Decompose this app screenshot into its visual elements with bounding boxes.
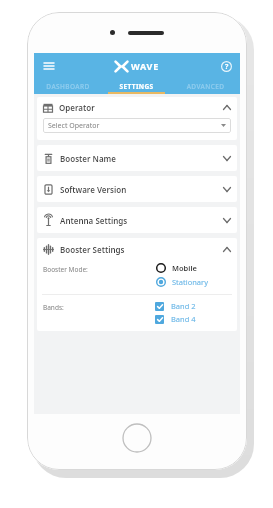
staticText: ? — [225, 62, 229, 72]
staticText: Booster Settings — [60, 244, 125, 255]
button[interactable]: Booster Settings — [37, 238, 237, 261]
staticText: SETTINGS — [102, 82, 171, 91]
button[interactable]: Menu — [41, 58, 57, 74]
staticText: DASHBOARD — [34, 82, 102, 91]
button[interactable]: Operator — [37, 97, 237, 118]
staticText: Mobile — [172, 263, 197, 273]
button[interactable]: Band 2 — [155, 301, 231, 311]
button[interactable]: Antenna Settings — [37, 207, 237, 233]
staticText: Stationary — [172, 277, 208, 287]
staticText: Band 4 — [171, 314, 196, 324]
button[interactable]: SETTINGS — [102, 78, 171, 94]
staticText: Booster Mode: — [43, 265, 88, 274]
button[interactable]: ADVANCED — [171, 78, 240, 94]
staticText: Antenna Settings — [60, 215, 128, 226]
staticText: ADVANCED — [171, 82, 240, 91]
staticText: Band 2 — [171, 301, 196, 311]
staticText: WAVE — [131, 60, 159, 72]
button[interactable]: Band 4 — [155, 314, 231, 324]
staticText: Software Version — [60, 184, 127, 195]
button[interactable]: Software Version — [37, 176, 237, 202]
button[interactable]: Help — [218, 58, 234, 74]
staticText: Select Operator — [48, 121, 100, 131]
button[interactable]: Select Operator — [43, 118, 231, 133]
staticText: Operator — [59, 102, 95, 113]
button[interactable]: Mobile — [155, 262, 231, 273]
staticText: Booster Name — [60, 153, 116, 164]
button[interactable]: Stationary — [155, 276, 231, 287]
staticText: Bands: — [43, 303, 64, 312]
button[interactable]: DASHBOARD — [34, 78, 102, 94]
button[interactable]: Booster Name — [37, 145, 237, 171]
